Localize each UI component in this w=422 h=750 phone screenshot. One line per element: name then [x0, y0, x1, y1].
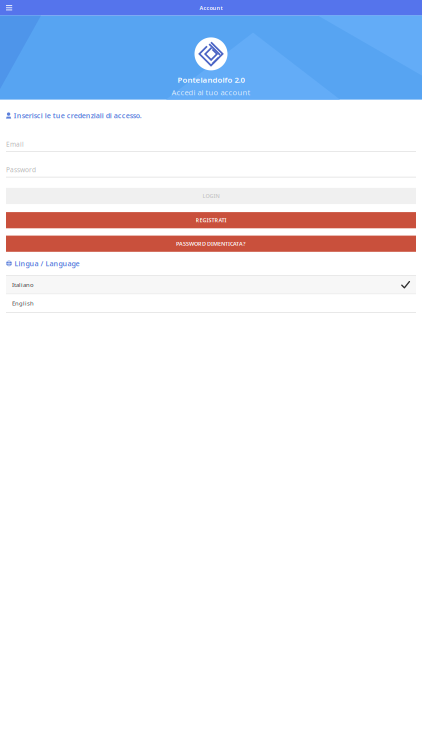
- staticText: Email: [6, 140, 24, 149]
- staticText: Lingua / Language: [15, 259, 80, 268]
- staticText: REGISTRATI: [195, 216, 226, 224]
- button[interactable]: Italiano: [6, 276, 416, 293]
- staticText: Password: [6, 165, 36, 174]
- staticText: Accedi al tuo account: [171, 87, 250, 97]
- staticText: Italiano: [12, 281, 34, 289]
- staticText: LOGIN: [202, 192, 219, 200]
- button[interactable]: English: [6, 294, 416, 312]
- staticText: Inserisci le tue credenziali di accesso.: [14, 111, 142, 120]
- staticText: PASSWORD DIMENTICATA?: [176, 240, 246, 247]
- staticText: English: [12, 299, 34, 307]
- button[interactable]: Registrati: [6, 212, 416, 228]
- staticText: Account: [199, 4, 222, 11]
- staticText: Pontelandolfo 2.0: [177, 74, 244, 85]
- button[interactable]: Menu: [0, 0, 28, 16]
- button[interactable]: Password dimenticata?: [6, 236, 416, 252]
